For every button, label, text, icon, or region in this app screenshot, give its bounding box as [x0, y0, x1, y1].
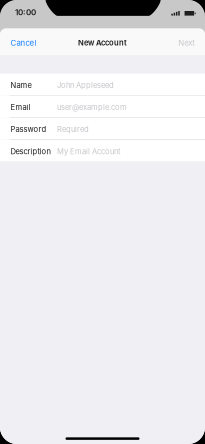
staticText: New Account: [78, 38, 127, 47]
staticText: Email: [11, 103, 31, 112]
button[interactable]: Description: [0, 140, 205, 161]
button[interactable]: Cancel: [0, 29, 47, 56]
staticText: Description: [11, 147, 51, 156]
button[interactable]: Next: [168, 29, 205, 56]
staticText: Password: [11, 125, 47, 134]
staticText: Name: [11, 81, 32, 90]
staticText: 10:00: [15, 8, 36, 17]
staticText: My Email Account: [57, 147, 120, 156]
staticText: Cancel: [11, 38, 37, 47]
button[interactable]: Email: [0, 96, 205, 117]
button[interactable]: Password: [0, 118, 205, 139]
staticText: John Appleseed: [57, 81, 114, 90]
staticText: Next: [178, 38, 195, 47]
staticText: Required: [57, 125, 89, 134]
button[interactable]: Name: [0, 74, 205, 95]
staticText: user@example.com: [57, 103, 127, 112]
